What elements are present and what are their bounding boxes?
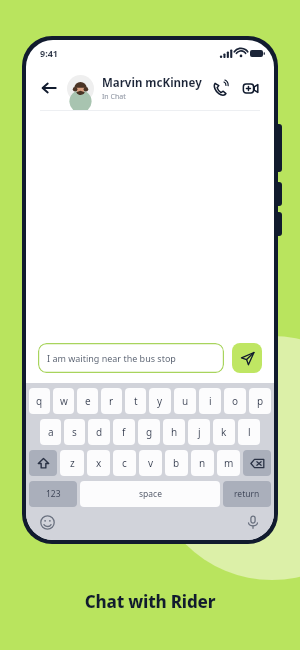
staticText: e	[85, 394, 91, 408]
button[interactable]: y	[149, 388, 171, 414]
staticText: g	[146, 425, 153, 439]
button[interactable]: c	[113, 450, 136, 476]
staticText: f	[122, 425, 126, 439]
staticText: x	[96, 456, 102, 470]
button[interactable]: 123	[29, 481, 77, 507]
staticText: t	[134, 394, 138, 408]
staticText: c	[122, 456, 127, 470]
staticText: Marvin mcKinney	[102, 75, 202, 91]
button[interactable]: i	[199, 388, 221, 414]
button[interactable]: u	[174, 388, 196, 414]
button[interactable]: h	[163, 419, 185, 445]
button[interactable]: l	[238, 419, 260, 445]
staticText: I am waiting near the bus stop	[47, 352, 176, 364]
staticText: s	[72, 425, 77, 439]
button[interactable]: s	[64, 419, 85, 445]
staticText: n	[199, 456, 206, 470]
staticText: o	[232, 394, 239, 408]
staticText: l	[248, 425, 251, 439]
button[interactable]: j	[188, 419, 210, 445]
button[interactable]: Call	[208, 76, 232, 100]
staticText: i	[209, 394, 212, 408]
button[interactable]: Send	[232, 343, 262, 373]
button[interactable]: t	[125, 388, 146, 414]
button[interactable]: x	[87, 450, 110, 476]
button[interactable]: Dictate	[243, 512, 263, 532]
button[interactable]: r	[101, 388, 122, 414]
staticText: u	[182, 394, 189, 408]
staticText: In Chat	[102, 92, 126, 102]
button[interactable]: v	[139, 450, 162, 476]
button[interactable]: space	[80, 481, 220, 507]
staticText: return	[234, 488, 260, 500]
button[interactable]: key	[29, 450, 57, 476]
staticText: q	[36, 394, 43, 408]
button[interactable]: k	[213, 419, 235, 445]
button[interactable]: a	[40, 419, 61, 445]
staticText: Chat with Rider	[0, 590, 300, 613]
button[interactable]: Back	[38, 77, 60, 99]
staticText: y	[157, 394, 163, 408]
button[interactable]: f	[113, 419, 135, 445]
staticText: 123	[46, 488, 61, 500]
staticText: v	[148, 456, 154, 470]
staticText: p	[257, 394, 264, 408]
staticText: h	[171, 425, 178, 439]
staticText: space	[139, 488, 162, 500]
staticText: m	[224, 456, 234, 470]
button[interactable]: d	[88, 419, 110, 445]
button[interactable]: p	[249, 388, 271, 414]
button[interactable]: Video call	[238, 76, 262, 100]
button[interactable]: z	[60, 450, 84, 476]
button[interactable]: e	[77, 388, 98, 414]
staticText: j	[198, 425, 201, 439]
button[interactable]: return	[223, 481, 271, 507]
button[interactable]: o	[224, 388, 246, 414]
staticText: r	[109, 394, 114, 408]
button[interactable]: Emoji	[37, 512, 57, 532]
button[interactable]: w	[53, 388, 74, 414]
staticText: 9:41	[40, 47, 58, 59]
button[interactable]: m	[217, 450, 240, 476]
button[interactable]: key	[243, 450, 271, 476]
button[interactable]: q	[29, 388, 50, 414]
staticText: a	[48, 425, 54, 439]
button[interactable]: b	[165, 450, 188, 476]
staticText: z	[70, 456, 75, 470]
staticText: b	[173, 456, 180, 470]
button[interactable]: g	[138, 419, 160, 445]
staticText: w	[60, 394, 68, 408]
button[interactable]: I am waiting near the bus stop	[38, 343, 224, 373]
staticText: d	[96, 425, 103, 439]
staticText: k	[221, 425, 227, 439]
button[interactable]: n	[191, 450, 214, 476]
